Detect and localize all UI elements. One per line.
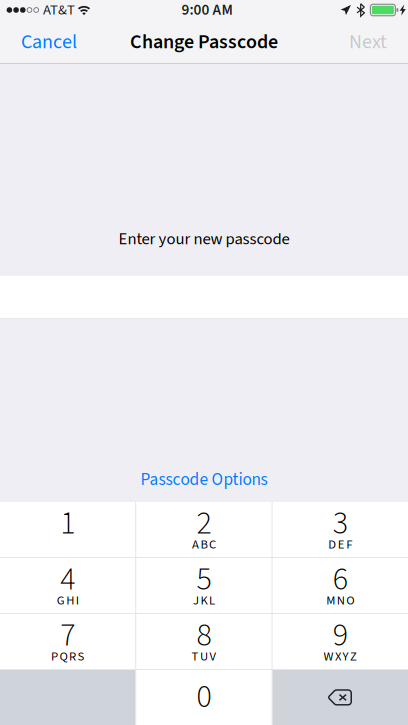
staticText: AT&T xyxy=(43,0,75,20)
staticText: 3 xyxy=(333,501,348,546)
staticText: 4 xyxy=(60,557,75,602)
button[interactable]: 4 xyxy=(0,558,135,613)
staticText: Next xyxy=(349,28,387,56)
staticText: 0 xyxy=(196,674,211,720)
button[interactable]: 5 xyxy=(136,558,272,613)
staticText: TUV xyxy=(191,647,216,665)
button[interactable]: 3 xyxy=(273,502,408,557)
button[interactable]: 0 xyxy=(136,670,272,725)
staticText: GHI xyxy=(57,591,79,609)
staticText: 9:00 AM xyxy=(181,0,232,21)
staticText: Passcode Options xyxy=(140,467,267,492)
staticText: 9 xyxy=(333,613,348,658)
staticText: ABC xyxy=(192,535,216,553)
staticText: 8 xyxy=(196,613,211,658)
button[interactable]: Next xyxy=(343,19,393,65)
staticText: Enter your new passcode xyxy=(118,227,289,251)
staticText: 7 xyxy=(60,613,75,658)
staticText: 2 xyxy=(196,501,211,546)
staticText: JKL xyxy=(193,591,215,609)
button[interactable]: 2 xyxy=(136,502,272,557)
button[interactable]: 7 xyxy=(0,614,135,669)
button[interactable]: Delete xyxy=(273,670,408,725)
staticText: DEF xyxy=(328,535,352,553)
button[interactable]: 8 xyxy=(136,614,272,669)
staticText: 6 xyxy=(333,557,348,602)
button[interactable]: Cancel xyxy=(15,19,83,65)
staticText: Cancel xyxy=(21,28,77,56)
staticText: 1 xyxy=(60,501,75,546)
button[interactable]: 1 xyxy=(0,502,135,557)
staticText: MNO xyxy=(326,591,354,609)
staticText: Change Passcode xyxy=(130,28,278,56)
button[interactable]: 6 xyxy=(273,558,408,613)
staticText: WXYZ xyxy=(324,647,357,665)
button[interactable]: Passcode Options xyxy=(126,460,281,499)
staticText: PQRS xyxy=(51,647,84,665)
button[interactable]: 9 xyxy=(273,614,408,669)
staticText: 5 xyxy=(196,557,211,602)
